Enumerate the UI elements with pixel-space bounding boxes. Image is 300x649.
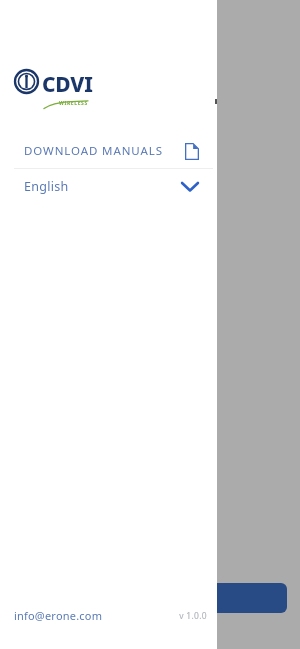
button[interactable]: English xyxy=(0,169,217,203)
button[interactable]: DOWNLOAD MANUALS xyxy=(0,134,217,168)
button[interactable]: info@erone.com xyxy=(14,608,103,623)
staticText: CDVI xyxy=(42,70,93,99)
staticText: English xyxy=(24,178,69,195)
staticText: WIRELESS xyxy=(59,100,88,107)
button[interactable]: Confirm xyxy=(200,583,287,613)
staticText: v 1.0.0 xyxy=(179,610,207,622)
staticText: DOWNLOAD MANUALS xyxy=(24,143,163,159)
